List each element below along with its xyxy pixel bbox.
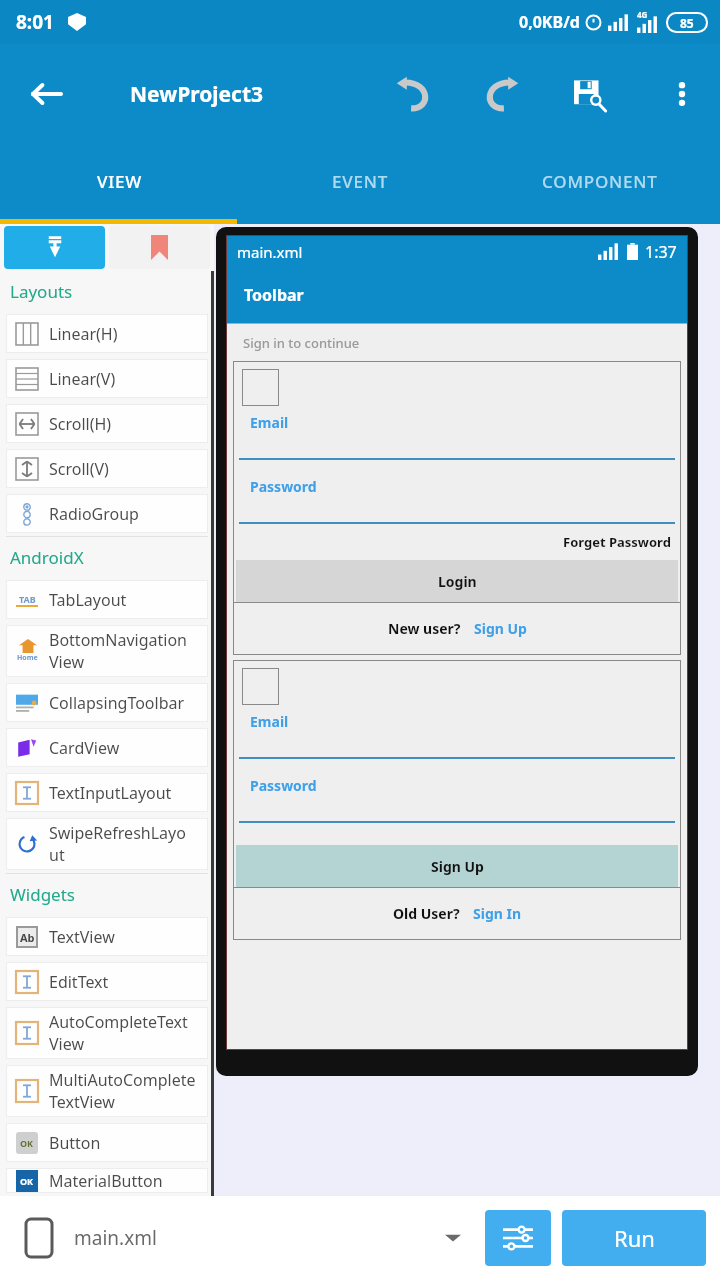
staticText: Scroll(H) xyxy=(49,413,208,435)
button[interactable]: Undo xyxy=(386,66,442,122)
staticText: RadioGroup xyxy=(49,503,208,525)
staticText: 85 xyxy=(680,15,694,31)
staticText: main.xml xyxy=(237,242,303,262)
staticText: Layouts xyxy=(10,280,73,303)
button[interactable]: MultiAutoComplete TextView xyxy=(6,1065,208,1117)
staticText: Linear(H) xyxy=(49,323,208,345)
button[interactable]: OK xyxy=(6,1123,208,1162)
button[interactable]: TextInputLayout xyxy=(6,773,208,812)
staticText: Email xyxy=(250,712,289,731)
staticText: EVENT xyxy=(332,170,389,193)
staticText: New user? xyxy=(388,619,461,638)
staticText: 4G xyxy=(637,9,648,20)
staticText: CollapsingToolbar xyxy=(49,692,208,714)
button[interactable]: Run xyxy=(562,1210,706,1266)
staticText: 8:01 xyxy=(16,9,54,35)
button[interactable]: Back xyxy=(22,70,70,118)
staticText: Sign Up xyxy=(431,857,484,876)
button[interactable]: Home xyxy=(6,625,208,677)
button[interactable]: Ab xyxy=(6,917,208,956)
button[interactable]: COMPONENT xyxy=(480,144,720,219)
button[interactable]: New user? xyxy=(233,602,681,655)
staticText: Widgets xyxy=(10,883,75,906)
staticText: TextInputLayout xyxy=(49,782,208,804)
staticText: Run xyxy=(614,1223,655,1253)
staticText: AutoCompleteText View xyxy=(49,1011,208,1055)
staticText: TextView xyxy=(49,926,208,948)
button[interactable]: EVENT xyxy=(240,144,480,219)
staticText: Linear(V) xyxy=(49,368,208,390)
staticText: NewProject3 xyxy=(130,80,264,109)
button[interactable]: Linear(V) xyxy=(6,359,208,398)
staticText: OK xyxy=(20,1175,34,1187)
staticText: VIEW xyxy=(97,170,143,193)
staticText: Password xyxy=(250,477,317,496)
staticText: AndroidX xyxy=(10,546,84,569)
button[interactable]: Palette xyxy=(4,226,105,269)
button[interactable]: Save xyxy=(561,66,617,122)
button[interactable]: SwipeRefreshLayo ut xyxy=(6,818,208,870)
button[interactable]: VIEW xyxy=(0,144,240,219)
button[interactable]: Redo xyxy=(473,66,529,122)
staticText: CardView xyxy=(49,737,208,759)
button[interactable]: Linear(H) xyxy=(6,314,208,353)
button[interactable]: Scroll(V) xyxy=(6,449,208,488)
staticText: Email xyxy=(250,413,289,432)
button[interactable]: CardView xyxy=(6,728,208,767)
button[interactable]: Scroll(H) xyxy=(6,404,208,443)
staticText: Password xyxy=(250,776,317,795)
staticText: Forget Password xyxy=(563,533,671,551)
staticText: MultiAutoComplete TextView xyxy=(49,1069,208,1113)
staticText: EditText xyxy=(49,971,208,993)
staticText: 1:37 xyxy=(645,241,677,263)
button[interactable]: Settings xyxy=(485,1210,551,1266)
button[interactable]: EditText xyxy=(6,962,208,1001)
staticText: Toolbar xyxy=(244,284,304,306)
button[interactable]: main.xml xyxy=(14,1196,485,1280)
staticText: COMPONENT xyxy=(542,170,658,193)
staticText: Sign in to continue xyxy=(243,334,360,352)
staticText: Old User? xyxy=(393,904,460,923)
staticText: MaterialButton xyxy=(49,1170,208,1192)
staticText: OK xyxy=(20,1137,34,1149)
staticText: TAB xyxy=(19,593,36,605)
button[interactable]: Login xyxy=(236,560,678,602)
staticText: Sign Up xyxy=(474,619,527,638)
staticText: main.xml xyxy=(74,1225,157,1251)
button[interactable]: OK xyxy=(6,1168,208,1193)
staticText: TabLayout xyxy=(49,589,208,611)
button[interactable]: CollapsingToolbar xyxy=(6,683,208,722)
staticText: Button xyxy=(49,1132,208,1154)
staticText: Login xyxy=(438,572,477,591)
staticText: Home xyxy=(17,653,38,663)
staticText: Sign In xyxy=(473,904,522,923)
staticText: BottomNavigation View xyxy=(49,629,208,673)
staticText: SwipeRefreshLayo ut xyxy=(49,822,208,866)
staticText: Scroll(V) xyxy=(49,458,208,480)
button[interactable]: Favorites xyxy=(109,226,210,269)
button[interactable]: AutoCompleteText View xyxy=(6,1007,208,1059)
button[interactable]: Sign Up xyxy=(236,845,678,887)
button[interactable]: RadioGroup xyxy=(6,494,208,533)
button[interactable]: Old User? xyxy=(233,887,681,940)
staticText: 0,0KB/d xyxy=(519,11,580,33)
button[interactable]: More options xyxy=(656,68,708,120)
staticText: Ab xyxy=(20,930,35,945)
button[interactable]: TAB xyxy=(6,580,208,619)
